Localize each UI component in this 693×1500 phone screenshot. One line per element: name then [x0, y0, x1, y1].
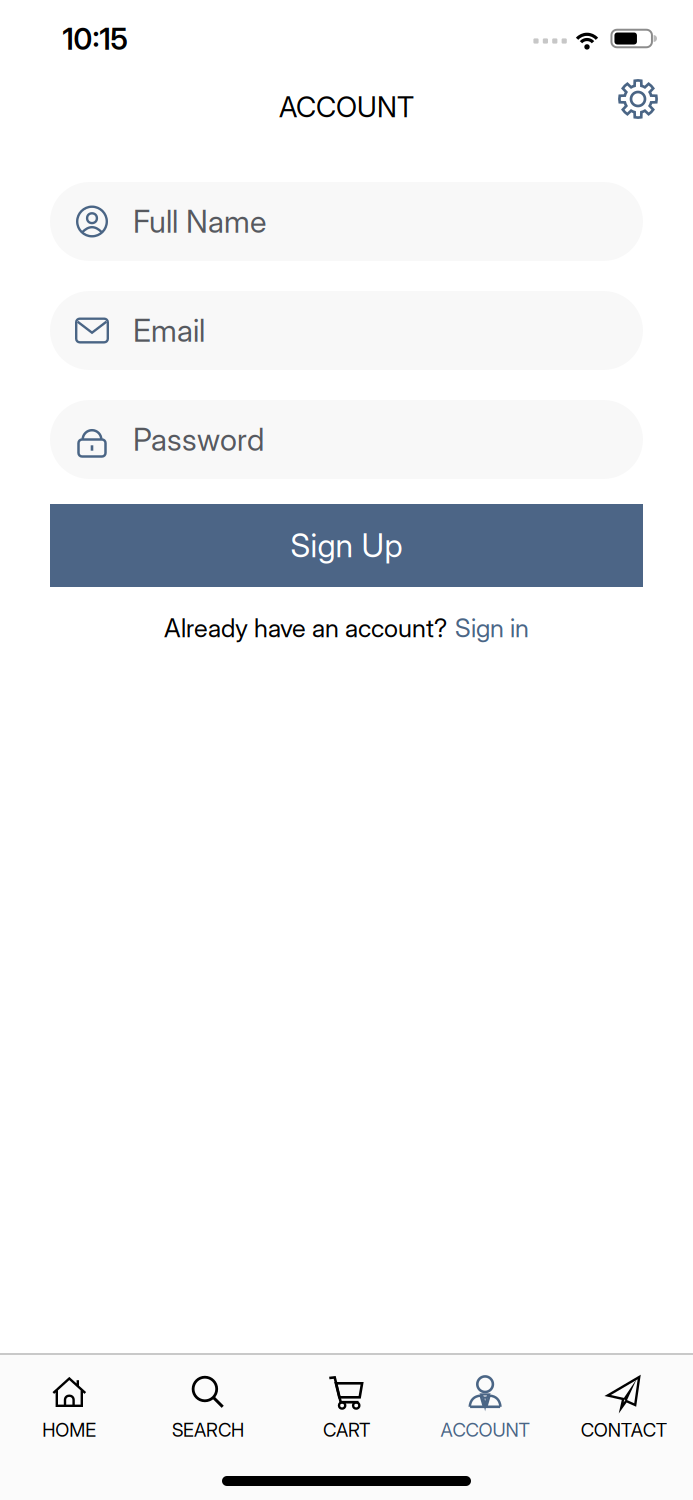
button[interactable]: Sign Up — [50, 504, 643, 587]
button[interactable] — [617, 78, 658, 119]
button[interactable]: CART — [277, 1354, 416, 1462]
staticText: 10:15 — [62, 22, 127, 56]
staticText: CONTACT — [581, 1419, 667, 1441]
button[interactable]: CONTACT — [554, 1354, 693, 1462]
staticText: ACCOUNT — [279, 90, 414, 123]
button[interactable]: Full Name — [50, 182, 643, 261]
staticText: Password — [133, 421, 264, 458]
button[interactable]: ACCOUNT — [416, 1354, 554, 1462]
staticText: SEARCH — [172, 1419, 244, 1441]
button[interactable]: HOME — [0, 1354, 139, 1462]
staticText: Full Name — [133, 203, 266, 240]
staticText: HOME — [42, 1419, 96, 1441]
button[interactable]: Sign in — [455, 613, 529, 643]
staticText: Sign in — [455, 613, 529, 643]
staticText: Sign Up — [290, 527, 402, 564]
staticText: CART — [323, 1419, 370, 1441]
staticText: ACCOUNT — [441, 1419, 530, 1441]
button[interactable]: Password — [50, 400, 643, 479]
staticText: Email — [133, 312, 205, 349]
button[interactable]: Email — [50, 291, 643, 370]
button[interactable]: SEARCH — [139, 1354, 277, 1462]
staticText: Already have an account? — [164, 613, 447, 643]
